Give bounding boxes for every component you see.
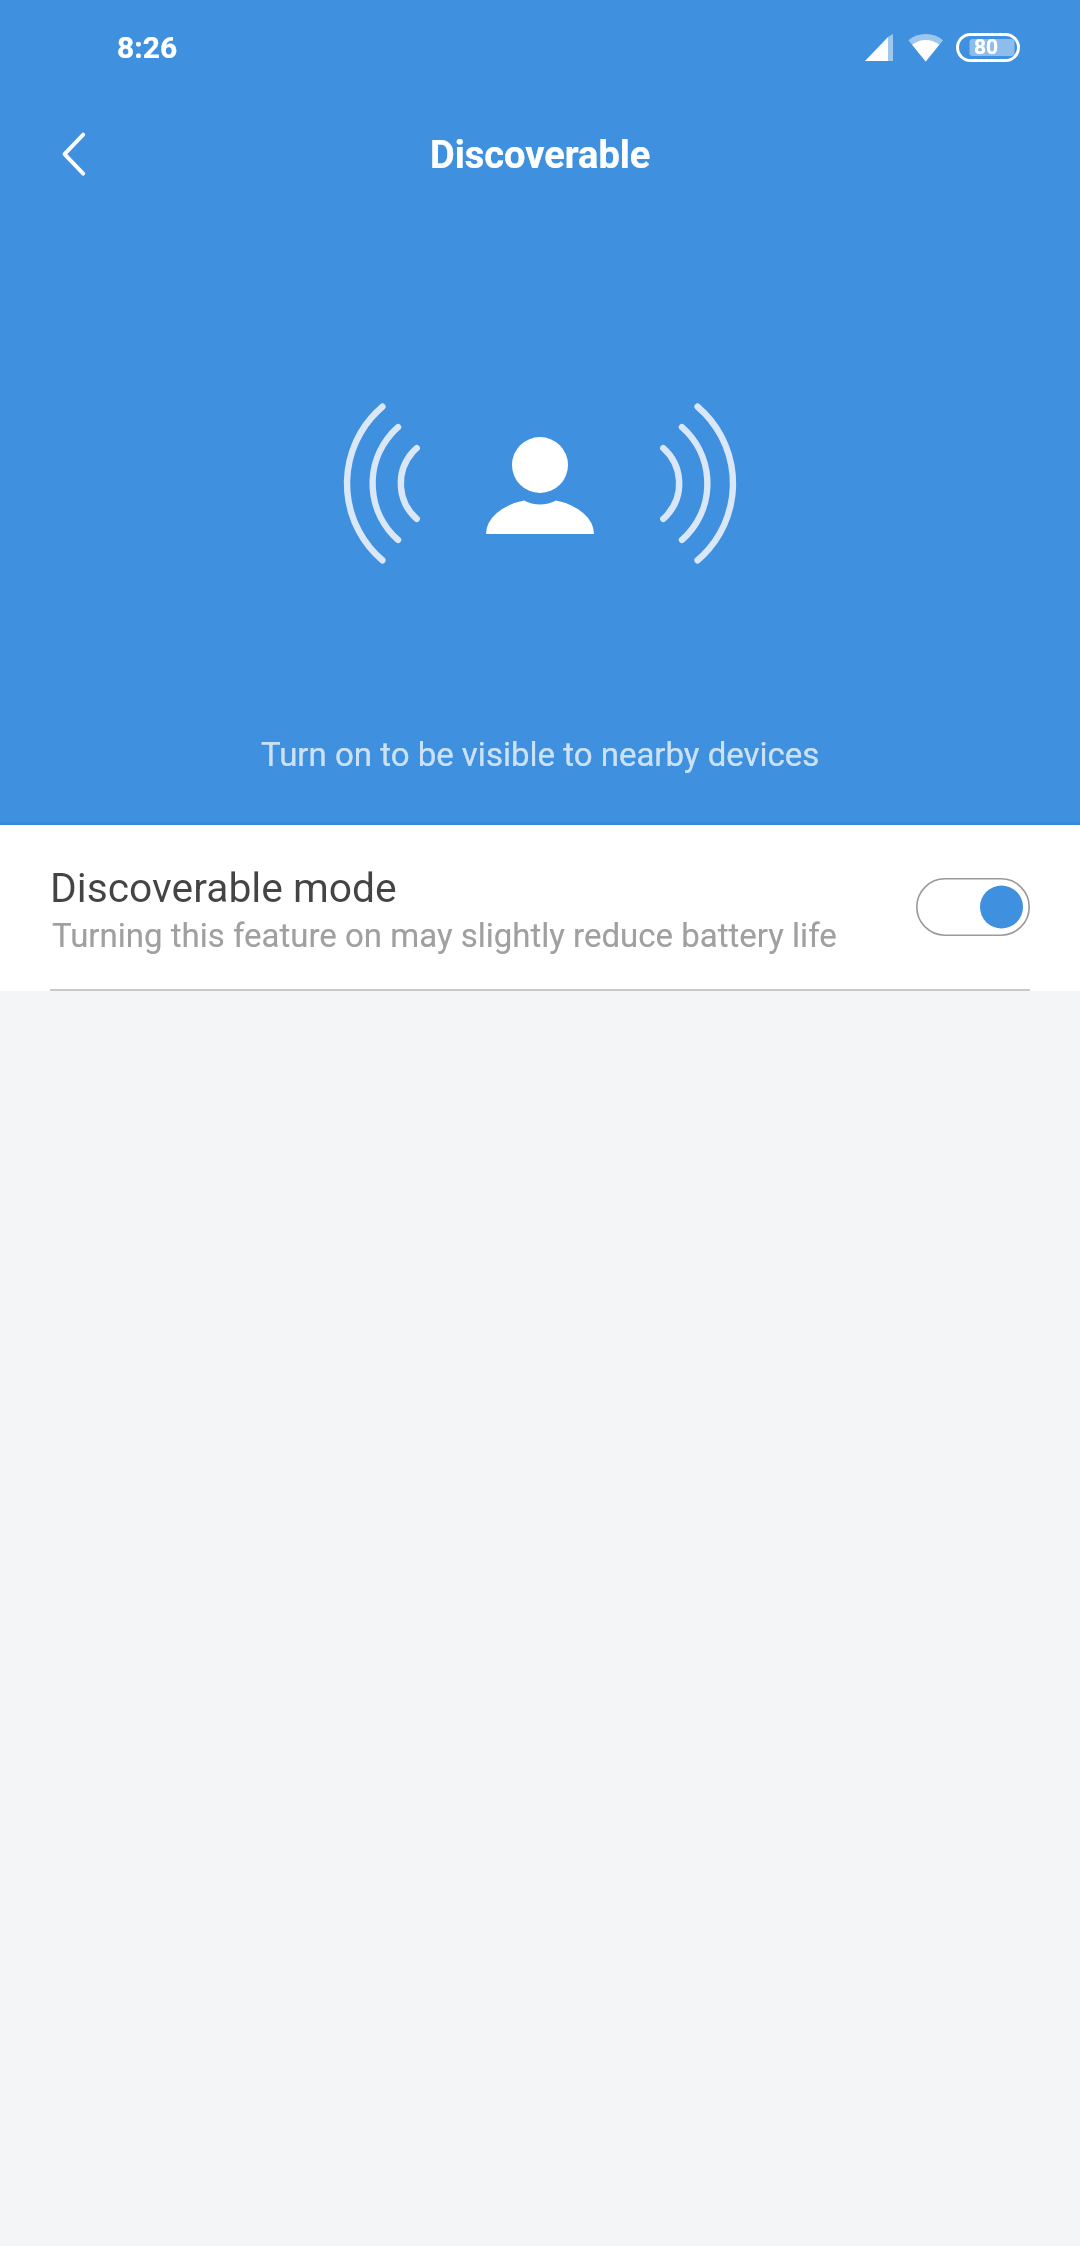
staticText: 80: [974, 35, 999, 60]
staticText: 8:26: [117, 30, 178, 65]
button[interactable]: Discoverable mode toggle, on: [916, 878, 1030, 936]
staticText: Discoverable mode: [50, 864, 397, 912]
staticText: Turning this feature on may slightly red…: [52, 916, 837, 955]
staticText: Turn on to be visible to nearby devices: [261, 735, 820, 774]
button[interactable]: Back: [8, 95, 118, 215]
button[interactable]: Discoverable mode: [0, 825, 1080, 991]
staticText: Discoverable: [430, 133, 651, 178]
